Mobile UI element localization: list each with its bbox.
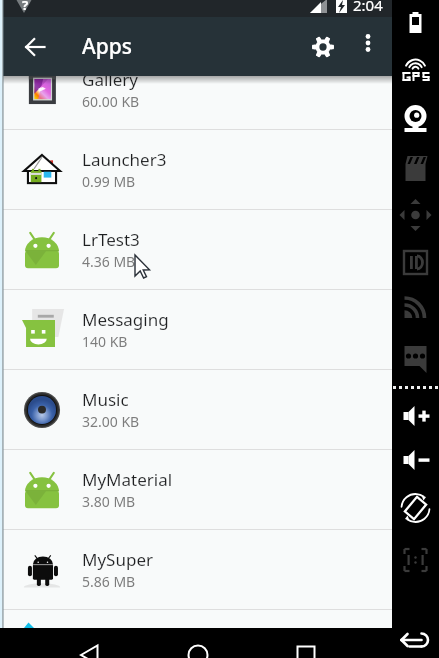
button[interactable]: Rotate (392, 488, 439, 534)
staticText: Apps (82, 32, 133, 61)
staticText: 2:04 (353, 0, 383, 12)
staticText: 4.36 MB (82, 252, 136, 271)
button[interactable]: MySuper (0, 530, 392, 610)
staticText: 0.99 MB (82, 172, 136, 191)
button[interactable]: More options (348, 23, 388, 63)
button[interactable]: Music (0, 370, 392, 450)
button[interactable]: LrTest3 (0, 210, 392, 290)
staticText: Messaging (82, 308, 169, 331)
staticText: LrTest3 (82, 228, 140, 251)
button[interactable]: Nfc (0, 610, 392, 658)
staticText: MyMaterial (82, 468, 173, 491)
button[interactable]: Launcher3 (0, 130, 392, 210)
staticText: 60.00 KB (82, 92, 140, 111)
staticText: 32.00 KB (82, 412, 140, 431)
button[interactable]: Power (392, 0, 439, 46)
staticText: Music (82, 388, 129, 411)
button[interactable]: Home (170, 628, 226, 658)
staticText: 5.86 MB (82, 572, 136, 591)
staticText: MySuper (82, 548, 153, 571)
button[interactable]: Zoom 1:1 (392, 538, 439, 584)
staticText: 3.80 MB (82, 492, 136, 511)
button[interactable]: Phone ID (392, 240, 439, 286)
button[interactable]: Record (392, 146, 439, 192)
staticText: 0.50 MB (82, 652, 136, 658)
button[interactable]: Messaging (0, 290, 392, 370)
button[interactable]: Cellular (392, 286, 439, 332)
button[interactable]: Directional pad (392, 192, 439, 238)
staticText: 140 KB (82, 332, 128, 351)
button[interactable]: MyMaterial (0, 450, 392, 530)
button[interactable]: Recent apps (278, 628, 334, 658)
button[interactable]: Volume down (392, 440, 439, 484)
button[interactable]: Back (62, 628, 118, 658)
button[interactable]: Volume up (392, 396, 439, 440)
staticText: Gallery (82, 68, 138, 91)
button[interactable]: Gallery (0, 50, 392, 130)
staticText: ? (22, 0, 29, 13)
staticText: Launcher3 (82, 148, 167, 171)
button[interactable]: GPS (392, 50, 439, 96)
button[interactable]: Camera (392, 98, 439, 144)
staticText: Nfc (82, 628, 109, 651)
button[interactable]: Messages (392, 332, 439, 388)
button[interactable]: Back (392, 620, 439, 658)
button[interactable]: Back (11, 23, 59, 71)
button[interactable]: Settings (299, 23, 347, 71)
